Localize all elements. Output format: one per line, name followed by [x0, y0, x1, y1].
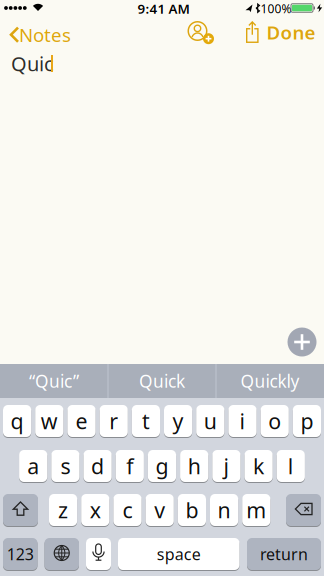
button[interactable]: p: [293, 404, 321, 438]
button[interactable]: Add: [287, 327, 316, 356]
button[interactable]: d: [83, 449, 112, 483]
staticText: space: [157, 543, 201, 565]
staticText: z: [58, 496, 68, 524]
staticText: b: [185, 496, 198, 524]
button[interactable]: Done: [263, 21, 319, 43]
button[interactable]: “Quic”: [1, 364, 107, 398]
staticText: Done: [266, 20, 315, 45]
button[interactable]: h: [180, 449, 208, 483]
button[interactable]: l: [277, 449, 305, 483]
staticText: l: [288, 452, 294, 480]
button[interactable]: q: [3, 404, 31, 438]
button[interactable]: f: [116, 449, 144, 483]
button[interactable]: m: [242, 493, 270, 527]
staticText: 100%: [260, 0, 291, 16]
staticText: Notes: [19, 22, 71, 47]
staticText: c: [122, 496, 132, 524]
staticText: s: [60, 452, 70, 480]
staticText: x: [90, 496, 101, 524]
staticText: v: [154, 496, 165, 524]
staticText: a: [27, 452, 39, 480]
button[interactable]: Delete: [286, 493, 321, 527]
button[interactable]: Share: [246, 21, 259, 43]
staticText: o: [268, 407, 281, 435]
button[interactable]: c: [113, 493, 142, 527]
button[interactable]: Notes: [5, 26, 69, 44]
staticText: Quick: [139, 369, 185, 392]
button[interactable]: Shift: [3, 493, 38, 527]
staticText: r: [109, 407, 118, 435]
button[interactable]: u: [196, 404, 224, 438]
staticText: n: [218, 496, 231, 524]
staticText: d: [91, 452, 104, 480]
staticText: j: [223, 452, 229, 480]
button[interactable]: r: [100, 404, 128, 438]
button[interactable]: Dictate: [86, 537, 111, 571]
button[interactable]: e: [67, 404, 96, 438]
staticText: t: [142, 407, 150, 435]
staticText: m: [246, 496, 266, 524]
button[interactable]: Add People: [187, 20, 215, 45]
staticText: q: [11, 407, 24, 435]
button[interactable]: g: [148, 449, 176, 483]
staticText: p: [300, 407, 313, 435]
staticText: Quickly: [240, 369, 299, 392]
button[interactable]: t: [132, 404, 160, 438]
button[interactable]: i: [228, 404, 257, 438]
button[interactable]: a: [19, 449, 47, 483]
staticText: i: [239, 407, 245, 435]
button[interactable]: x: [81, 493, 109, 527]
staticText: h: [188, 452, 201, 480]
button[interactable]: Next keyboard: [44, 537, 79, 571]
staticText: return: [260, 543, 308, 565]
staticText: y: [173, 407, 184, 435]
button[interactable]: w: [35, 404, 63, 438]
staticText: f: [126, 452, 133, 480]
button[interactable]: n: [210, 493, 238, 527]
staticText: u: [204, 407, 217, 435]
button[interactable]: v: [146, 493, 174, 527]
button[interactable]: o: [261, 404, 289, 438]
staticText: 9:41 AM: [137, 0, 189, 17]
staticText: 123: [7, 543, 34, 565]
button[interactable]: Quickly: [217, 364, 323, 398]
button[interactable]: return: [247, 537, 321, 571]
button[interactable]: k: [244, 449, 273, 483]
staticText: e: [75, 407, 87, 435]
staticText: g: [155, 452, 168, 480]
button[interactable]: space: [118, 537, 239, 571]
staticText: w: [41, 407, 58, 435]
button[interactable]: b: [178, 493, 206, 527]
button[interactable]: j: [212, 449, 240, 483]
staticText: “Quic”: [29, 369, 79, 392]
button[interactable]: Quick: [109, 364, 215, 398]
staticText: k: [253, 452, 264, 480]
button[interactable]: 123: [3, 537, 37, 571]
staticText: Quic: [11, 50, 54, 77]
button[interactable]: s: [51, 449, 79, 483]
button[interactable]: y: [164, 404, 192, 438]
button[interactable]: z: [49, 493, 77, 527]
